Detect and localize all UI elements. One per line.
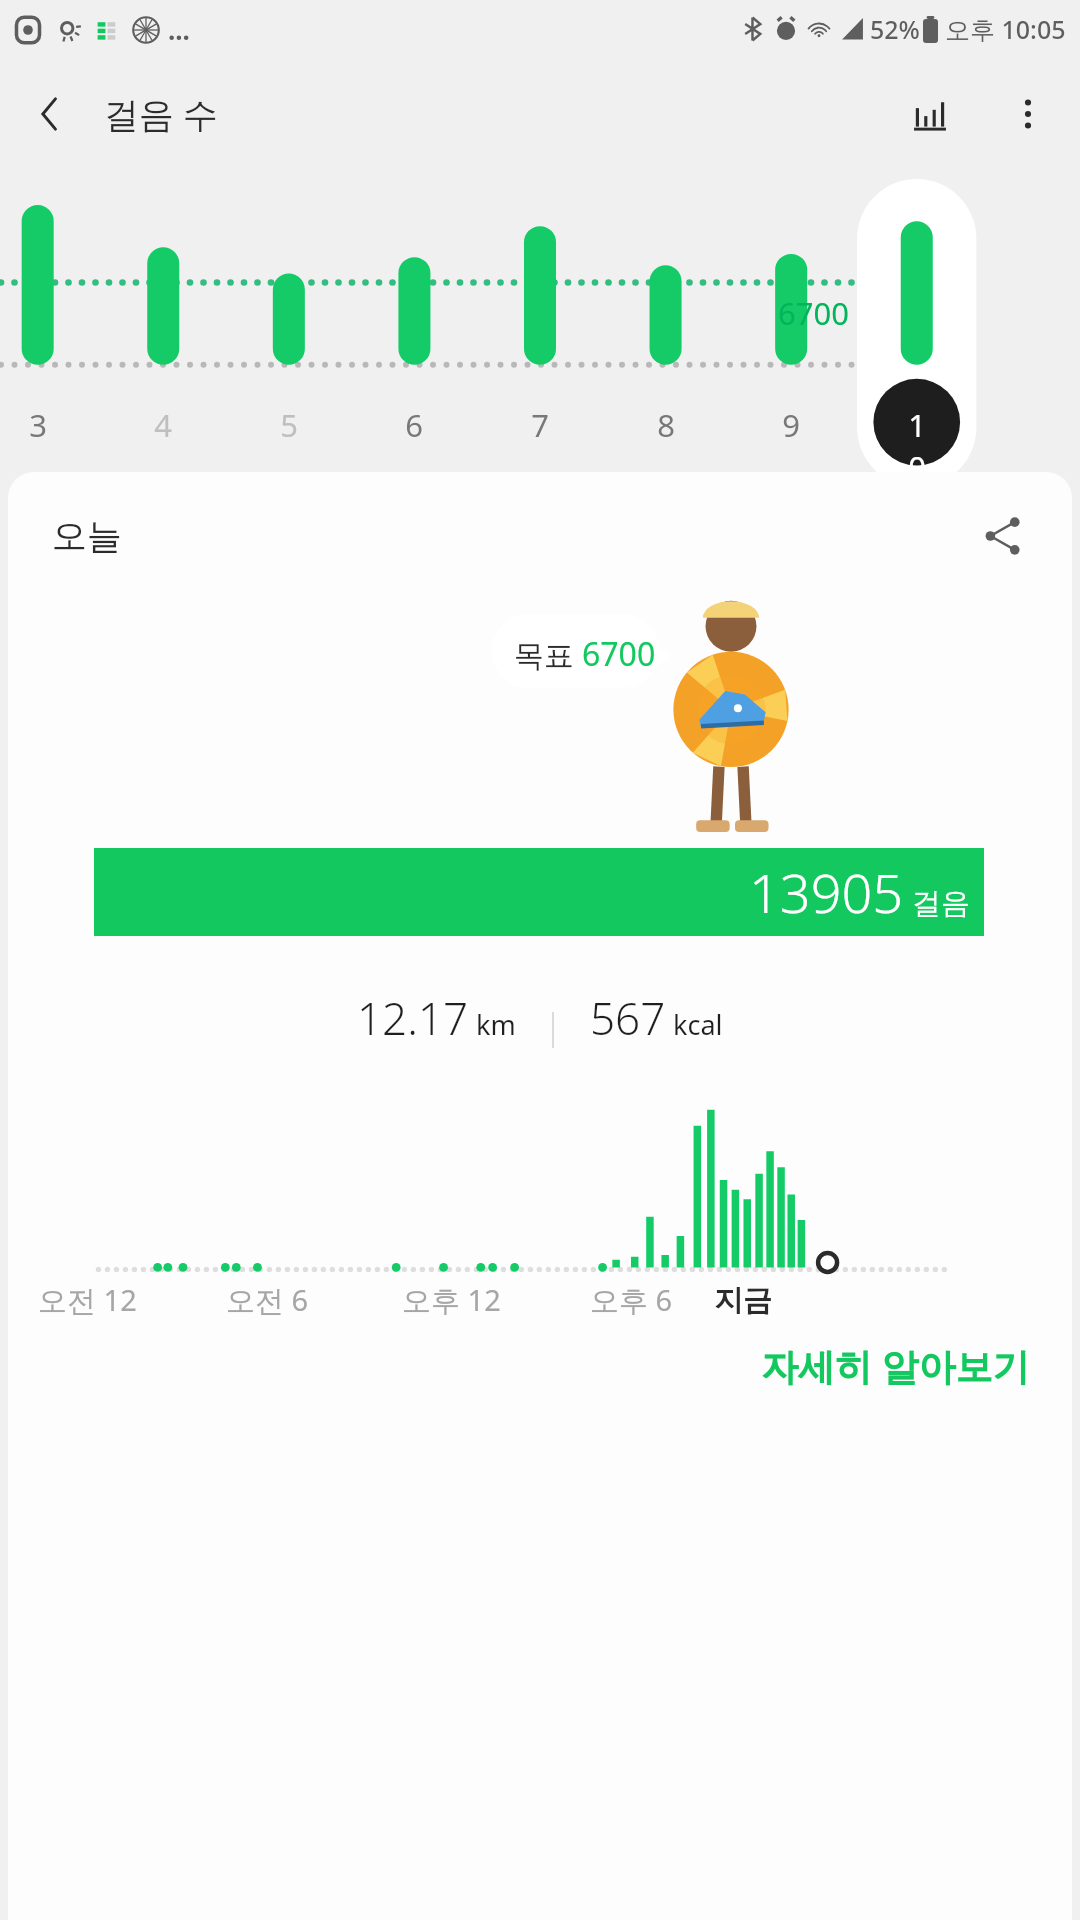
staticText: 걸음 수 — [104, 90, 219, 138]
staticText: kcal — [673, 1006, 723, 1043]
staticText: 9 — [777, 404, 805, 446]
button[interactable]: 567 — [590, 988, 723, 1048]
staticText: 6700 — [778, 292, 849, 334]
button[interactable]: Share — [960, 493, 1046, 579]
button[interactable]: Trends — [880, 64, 980, 164]
staticText: 4 — [149, 404, 177, 446]
staticText: 6700 — [582, 632, 656, 676]
button[interactable]: 13905 — [94, 848, 984, 936]
button[interactable]: More options — [980, 66, 1076, 162]
staticText: 걸음 — [912, 885, 970, 922]
staticText: 13905 — [749, 855, 904, 929]
button[interactable]: 자세히 알아보기 — [761, 1340, 1030, 1391]
staticText: 지금 — [714, 1282, 772, 1319]
staticText: 6 — [400, 404, 428, 446]
staticText: 3 — [24, 404, 52, 446]
button[interactable]: 12.17 — [357, 988, 516, 1048]
staticText: 오후 6 — [590, 1280, 673, 1320]
staticText: 오전 12 — [38, 1280, 137, 1320]
staticText: 목표 — [514, 634, 582, 675]
staticText: 7 — [526, 404, 554, 446]
staticText: 오후 12 — [402, 1280, 501, 1320]
staticText: 오후 10:05 — [945, 12, 1066, 46]
staticText: 5 — [275, 404, 303, 446]
staticText: ... — [168, 12, 190, 47]
staticText: 오늘 — [52, 514, 122, 558]
staticText: 8 — [652, 404, 680, 446]
staticText: 오전 6 — [226, 1280, 309, 1320]
button[interactable]: Back — [0, 64, 100, 164]
staticText: 52% — [870, 12, 920, 46]
staticText: km — [476, 1006, 516, 1043]
staticText: 10 — [903, 404, 931, 488]
staticText: 12.17 — [357, 988, 469, 1048]
staticText: 567 — [590, 988, 666, 1048]
